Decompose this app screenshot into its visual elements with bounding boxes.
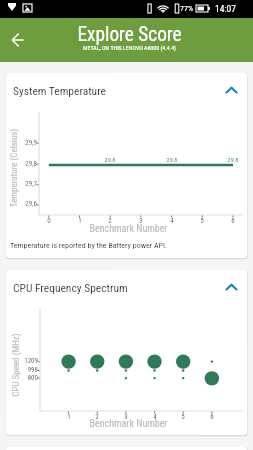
staticText: 0: [39, 217, 59, 225]
staticText: 1: [70, 217, 90, 225]
staticText: 77%: [180, 4, 193, 13]
staticText: 3: [116, 413, 136, 421]
staticText: 2: [100, 217, 120, 225]
staticText: 1: [59, 413, 79, 421]
staticText: 5: [192, 217, 212, 225]
staticText: CPU Speed (MHz): [11, 305, 22, 425]
staticText: 2: [87, 413, 107, 421]
button[interactable]: System Temperature: [6, 73, 247, 107]
staticText: 6: [223, 217, 243, 225]
staticText: System Temperature: [13, 84, 106, 97]
staticText: 29.8: [160, 156, 184, 163]
staticText: 29,9: [8, 139, 37, 147]
staticText: 4: [162, 217, 182, 225]
staticText: 29,6: [8, 200, 37, 208]
staticText: CPU Frequency Spectrum: [13, 281, 128, 294]
button[interactable]: CPU Frequency Spectrum: [6, 270, 247, 304]
staticText: 3: [131, 217, 151, 225]
staticText: Benchmark Number: [8, 223, 247, 235]
staticText: 1209: [8, 357, 38, 365]
staticText: 5: [173, 413, 193, 421]
staticText: Temperature is reported by the Battery p…: [10, 241, 168, 250]
staticText: Temperature (Celsius): [9, 108, 20, 228]
staticText: 6: [202, 413, 222, 421]
button[interactable]: Back: [1, 23, 35, 57]
staticText: 29.8: [221, 156, 245, 163]
staticText: METAL, ON THIS LENOVO A6000 (4.4.4): [3, 45, 253, 52]
staticText: 14:07: [215, 3, 236, 14]
staticText: 29,7: [8, 180, 37, 188]
staticText: Explore Score: [3, 23, 253, 46]
staticText: 4: [145, 413, 165, 421]
staticText: 29.8: [98, 156, 122, 163]
staticText: 998: [8, 366, 38, 374]
staticText: Benchmark Number: [8, 418, 247, 430]
staticText: 800: [8, 374, 38, 382]
staticText: 29,8: [8, 160, 37, 168]
